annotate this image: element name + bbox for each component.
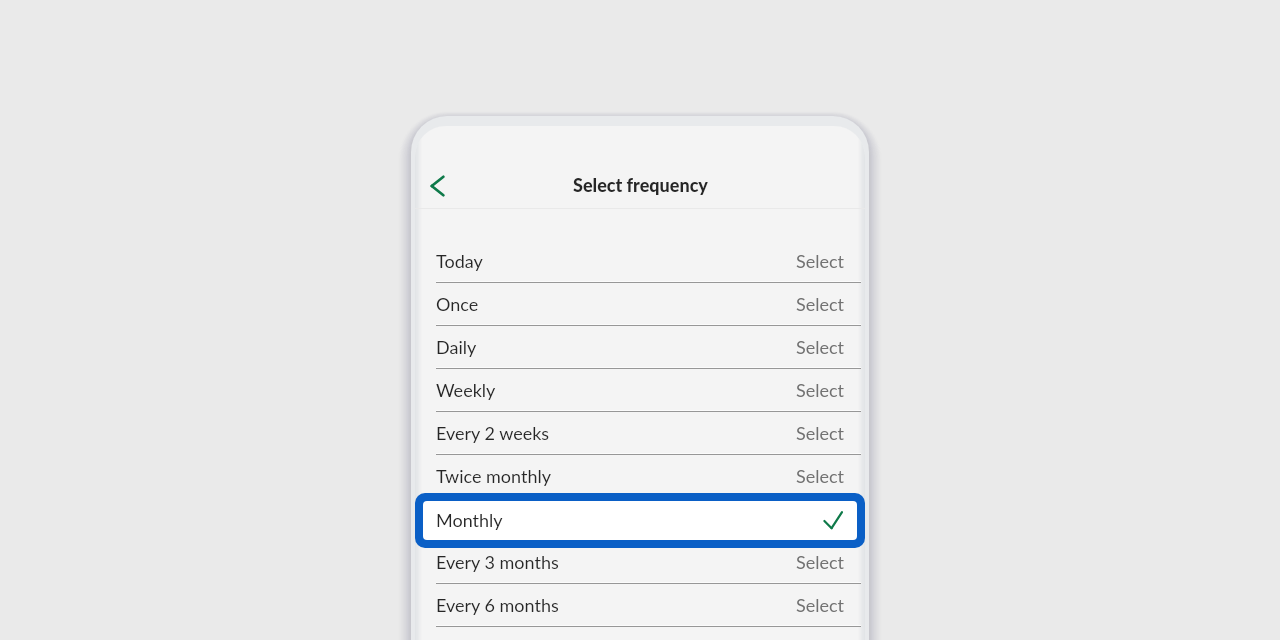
- button[interactable]: Every 3 months: [415, 541, 865, 584]
- staticText: Every 6 months: [436, 594, 559, 616]
- button[interactable]: Back: [417, 164, 461, 208]
- button[interactable]: Every 6 months: [415, 584, 865, 627]
- staticText: Today: [436, 250, 483, 272]
- button[interactable]: Once: [415, 283, 865, 326]
- staticText: Select: [796, 336, 845, 358]
- staticText: Every 3 months: [436, 551, 559, 573]
- staticText: Twice monthly: [436, 465, 552, 487]
- staticText: Monthly: [436, 509, 503, 531]
- staticText: Select: [796, 250, 845, 272]
- staticText: Select frequency: [573, 174, 708, 196]
- staticText: Every 2 weeks: [436, 422, 550, 444]
- staticText: Select: [796, 594, 845, 616]
- button[interactable]: Every 2 weeks: [415, 412, 865, 455]
- staticText: Select: [796, 551, 845, 573]
- button[interactable]: Daily: [415, 326, 865, 369]
- button[interactable]: Today: [415, 240, 865, 283]
- staticText: Weekly: [436, 379, 496, 401]
- button[interactable]: Weekly: [415, 369, 865, 412]
- button[interactable]: Monthly: [423, 501, 857, 540]
- staticText: Daily: [436, 336, 477, 358]
- staticText: Once: [436, 293, 479, 315]
- button[interactable]: Twice monthly: [415, 455, 865, 498]
- staticText: Select: [796, 465, 845, 487]
- staticText: Select: [796, 379, 845, 401]
- staticText: Select: [796, 293, 845, 315]
- staticText: Select: [796, 422, 845, 444]
